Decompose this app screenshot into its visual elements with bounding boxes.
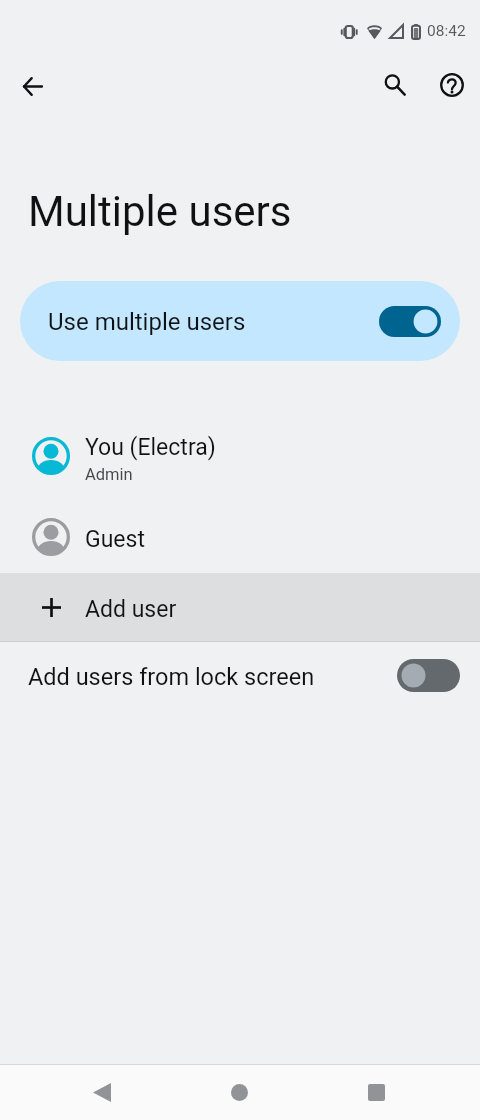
button[interactable]: Home [215, 1068, 263, 1116]
staticText: Admin [85, 465, 133, 484]
staticText: 08:42 [427, 22, 466, 40]
button[interactable]: You (Electra) [0, 420, 480, 496]
button[interactable]: Add users from lock screen [0, 642, 480, 710]
button[interactable]: Back [9, 63, 56, 110]
staticText: Guest [85, 526, 145, 553]
staticText: Use multiple users [48, 308, 246, 336]
staticText: You (Electra) [85, 434, 216, 461]
staticText: Add user [85, 596, 177, 623]
button[interactable]: Back [78, 1068, 126, 1116]
button[interactable]: Recents [352, 1068, 400, 1116]
staticText: Add users from lock screen [28, 663, 315, 691]
button[interactable]: Use multiple users [20, 281, 460, 361]
button[interactable]: Guest [0, 504, 480, 570]
button[interactable]: Search [371, 61, 418, 108]
button[interactable]: Add user [0, 573, 480, 641]
staticText: Multiple users [28, 187, 292, 236]
button[interactable]: Help [428, 61, 475, 108]
